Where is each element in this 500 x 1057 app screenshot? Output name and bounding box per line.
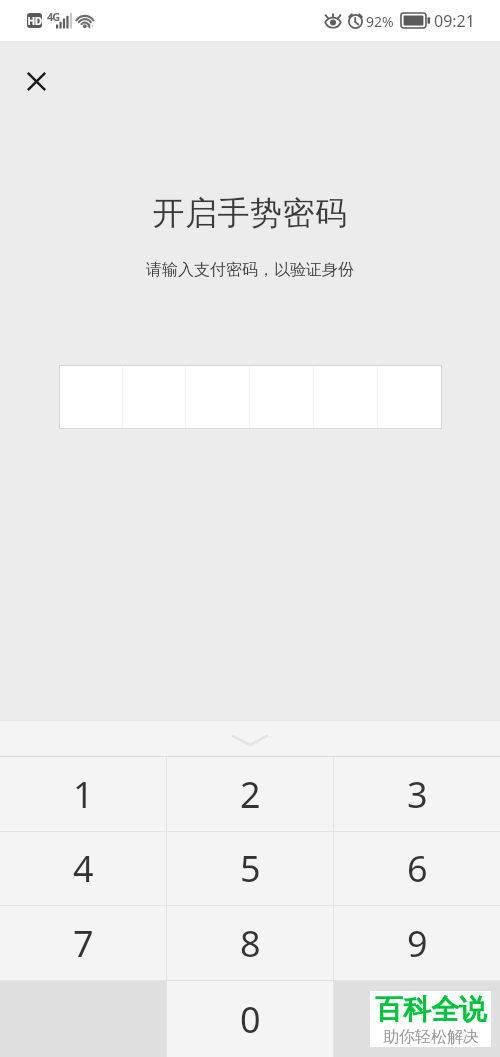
staticText: 09:21 (434, 10, 475, 32)
staticText: 4G (47, 9, 60, 24)
staticText: HD (27, 14, 42, 28)
button[interactable]: 0 (167, 981, 333, 1057)
staticText: 1 (73, 770, 94, 819)
staticText: 请输入支付密码，以验证身份 (0, 260, 500, 280)
staticText: 0 (240, 995, 261, 1044)
staticText: 8 (240, 919, 261, 968)
button[interactable]: 2 (167, 757, 333, 831)
button[interactable]: 4 (0, 832, 166, 905)
staticText: 3 (407, 770, 428, 819)
button[interactable]: 3 (334, 757, 500, 831)
button[interactable]: 8 (167, 906, 333, 980)
staticText: 6 (407, 844, 428, 893)
staticText: 开启手势密码 (0, 193, 500, 233)
staticText: 百科全说 (375, 992, 487, 1027)
staticText: 92% (366, 12, 394, 31)
staticText: 9 (407, 919, 428, 968)
staticText: 助你轻松解决 (383, 1027, 479, 1047)
button[interactable]: Delete (334, 981, 500, 1057)
staticText: 7 (73, 919, 94, 968)
button[interactable]: 5 (167, 832, 333, 905)
button[interactable]: 1 (0, 757, 166, 831)
staticText: 4 (73, 844, 94, 893)
staticText: 2 (240, 770, 261, 819)
button[interactable]: Close (0, 41, 66, 107)
button[interactable]: 6 (334, 832, 500, 905)
staticText: 5 (240, 844, 261, 893)
button[interactable]: 9 (334, 906, 500, 980)
button[interactable]: 7 (0, 906, 166, 980)
